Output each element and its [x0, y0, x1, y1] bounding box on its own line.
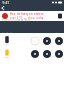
button[interactable]: Product	[54, 36, 64, 46]
button[interactable]: Product	[42, 36, 52, 46]
staticText: Free	[56, 32, 62, 35]
staticText: Free delivery on orders	[10, 12, 43, 16]
staticText: 9:41	[2, 0, 9, 5]
staticText: In stock	[2, 32, 12, 35]
staticText: over $35 — shop today	[10, 16, 43, 20]
button[interactable]: Product	[30, 36, 40, 46]
button[interactable]: Product	[42, 49, 52, 59]
button[interactable]: Product	[30, 49, 40, 59]
button[interactable]: Free delivery on orders	[0, 11, 64, 21]
button[interactable]: Product	[54, 49, 64, 59]
button[interactable]: Back	[0, 5, 7, 10]
staticText: Band	[5, 57, 9, 58]
staticText: Pick up today at Store	[2, 18, 31, 22]
